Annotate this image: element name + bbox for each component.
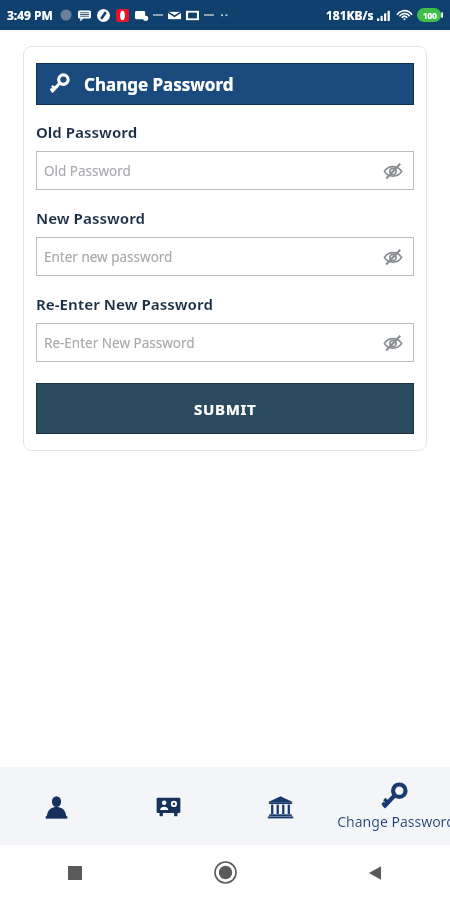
staticText: New Password: [36, 208, 146, 228]
button[interactable]: Back: [300, 845, 450, 900]
button[interactable]: ID Card: [112, 767, 224, 845]
staticText: SUBMIT: [194, 399, 257, 419]
button[interactable]: Change Password: [36, 63, 414, 105]
staticText: Re-Enter New Password: [44, 334, 380, 352]
staticText: Re-Enter New Password: [36, 294, 213, 314]
button[interactable]: Toggle password visibility: [380, 244, 406, 270]
staticText: Change Password: [337, 812, 450, 831]
staticText: 3:49 PM: [7, 7, 53, 23]
staticText: Old Password: [36, 122, 138, 142]
button[interactable]: Old Password: [36, 151, 414, 190]
staticText: 181KB/s: [326, 7, 374, 23]
button[interactable]: Toggle password visibility: [380, 330, 406, 356]
staticText: 100: [423, 10, 437, 21]
button[interactable]: Bank: [224, 767, 337, 845]
staticText: Change Password: [84, 73, 234, 96]
button[interactable]: Change Password: [337, 767, 450, 845]
staticText: Old Password: [44, 162, 380, 180]
button[interactable]: Toggle password visibility: [380, 158, 406, 184]
button[interactable]: Home: [150, 845, 300, 900]
button[interactable]: Recents: [0, 845, 150, 900]
button[interactable]: Re-Enter New Password: [36, 323, 414, 362]
button[interactable]: Enter new password: [36, 237, 414, 276]
staticText: Enter new password: [44, 248, 380, 266]
button[interactable]: SUBMIT: [36, 383, 414, 434]
button[interactable]: Profile: [0, 767, 112, 845]
